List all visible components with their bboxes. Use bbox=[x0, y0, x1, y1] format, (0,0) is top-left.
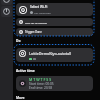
button[interactable]: Select Wi-Fi bbox=[16, 3, 93, 16]
staticText: Turn off all phones bbox=[25, 21, 48, 24]
button[interactable]: More options bbox=[1, 0, 12, 5]
button[interactable]: M T W T F S S bbox=[16, 76, 93, 91]
button[interactable]: LottieDemoKiyo-autotall bbox=[16, 48, 93, 62]
staticText: LottieDemoKiyo-autotall bbox=[29, 51, 72, 56]
staticText: M T W T F S S bbox=[29, 77, 52, 82]
button[interactable]: Trigger: Done bbox=[16, 28, 93, 36]
staticText: Trigger: Done bbox=[25, 30, 42, 34]
staticText: Select Wi-Fi bbox=[30, 5, 48, 9]
staticText: End time: 23:58 bbox=[29, 86, 53, 90]
button[interactable]: Power bbox=[1, 6, 12, 17]
button[interactable]: Turn off all phones bbox=[16, 18, 93, 26]
staticText: Do bbox=[16, 38, 21, 42]
staticText: Active time bbox=[16, 68, 35, 72]
staticText: Start time: 00:05 bbox=[29, 82, 54, 86]
staticText: Not connected bbox=[34, 11, 51, 14]
staticText: More bbox=[16, 95, 25, 99]
